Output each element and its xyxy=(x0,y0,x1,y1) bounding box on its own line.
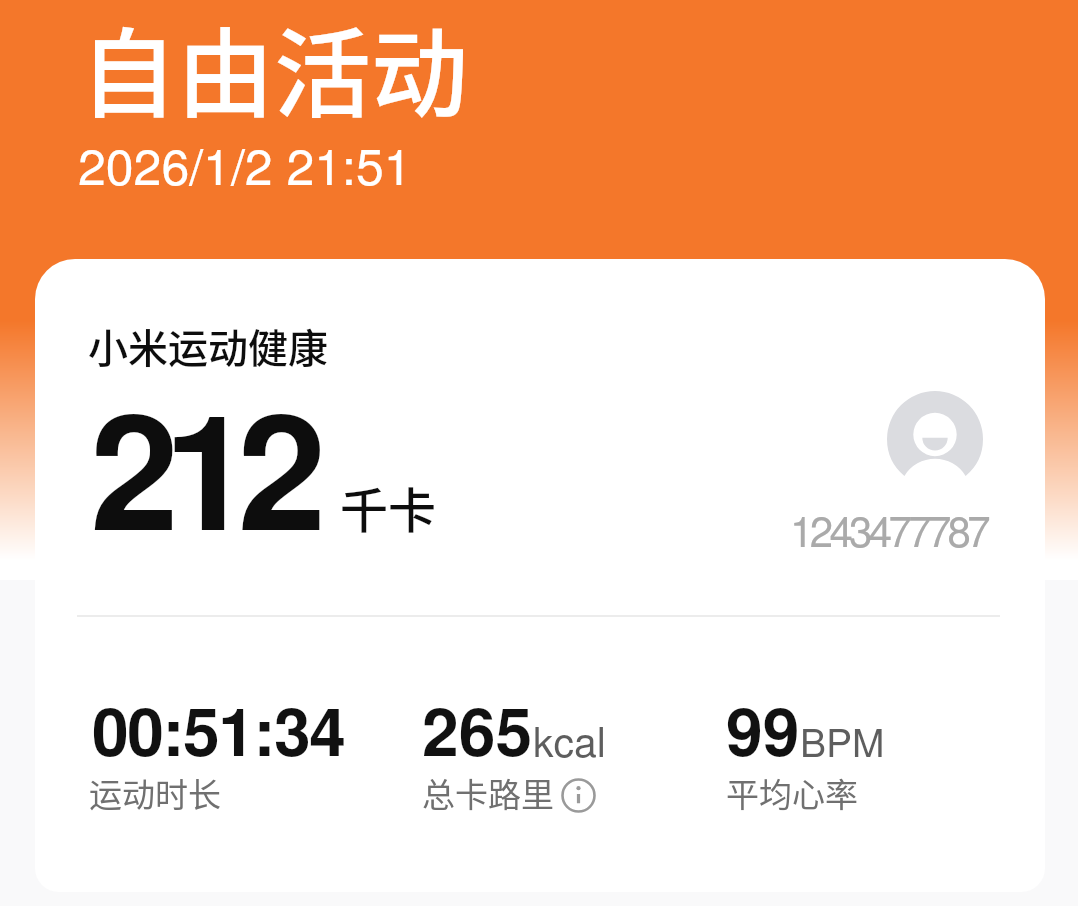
button[interactable]: 账号 1243477787 xyxy=(780,381,1000,561)
button[interactable]: 卡路里说明 xyxy=(561,778,596,813)
staticText: 总卡路里 xyxy=(422,769,554,817)
staticText: 小米运动健康 xyxy=(88,317,328,375)
staticText: 自由活动 xyxy=(80,0,468,136)
staticText: BPM xyxy=(800,712,885,768)
staticText: 99 xyxy=(726,682,800,777)
staticText: 千卡 xyxy=(340,472,437,542)
staticText: 212 xyxy=(90,350,312,579)
staticText: 2026/1/2 21:51 xyxy=(78,128,412,200)
staticText: 1243477787 xyxy=(790,499,987,559)
staticText: 平均心率 xyxy=(726,769,858,817)
staticText: 00:51:34 xyxy=(92,682,345,777)
staticText: kcal xyxy=(533,710,606,769)
staticText: 运动时长 xyxy=(89,769,221,817)
staticText: 265 xyxy=(422,682,533,777)
